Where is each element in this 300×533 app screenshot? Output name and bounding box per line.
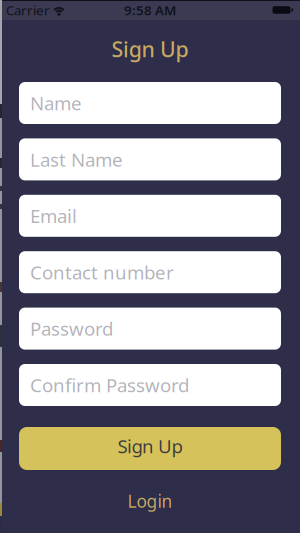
staticText: Carrier [6, 1, 50, 19]
staticText: Password [30, 316, 113, 341]
button[interactable]: Contact number [19, 251, 281, 293]
button[interactable]: Confirm Password [19, 364, 281, 406]
staticText: 9:58 AM [124, 1, 176, 19]
staticText: Sign Up [111, 35, 189, 63]
button[interactable]: Login [127, 493, 172, 509]
staticText: Sign Up [117, 434, 182, 458]
button[interactable]: Password [19, 308, 281, 350]
staticText: Confirm Password [30, 373, 189, 397]
staticText: Contact number [30, 260, 174, 285]
staticText: Name [30, 91, 82, 115]
staticText: Login [127, 489, 172, 512]
button[interactable]: Sign Up [19, 427, 281, 470]
staticText: Last Name [30, 147, 123, 172]
button[interactable]: Name [19, 82, 281, 124]
staticText: Email [30, 203, 77, 228]
button[interactable]: Email [19, 195, 281, 237]
button[interactable]: Last Name [19, 138, 281, 180]
